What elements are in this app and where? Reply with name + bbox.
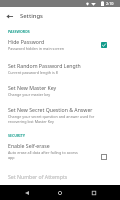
staticText: Change your master key <box>8 92 51 97</box>
staticText: app <box>8 155 15 160</box>
button[interactable]: Back <box>20 185 34 200</box>
button[interactable]: Disabled <box>100 151 108 162</box>
button[interactable]: Set Number of Attempts <box>0 173 120 180</box>
button[interactable]: Set New Master Key <box>0 84 120 96</box>
staticText: recovering lost Master Key <box>8 119 54 124</box>
button[interactable]: Enable Self-erase <box>0 142 120 159</box>
staticText: Settings <box>20 12 43 20</box>
staticText: 2:10 <box>106 1 114 6</box>
button[interactable]: Recent apps <box>87 185 101 200</box>
button[interactable]: Navigate up <box>0 7 18 25</box>
staticText: Set Number of Attempts <box>8 173 68 180</box>
button[interactable]: Home <box>53 185 67 200</box>
staticText: Enable Self-erase <box>8 142 50 149</box>
staticText: SECURITY <box>8 133 26 138</box>
staticText: Auto erase all data after failing to acc… <box>8 150 78 155</box>
button[interactable]: Set Random Password Length <box>0 62 120 74</box>
staticText: Set New Secret Question & Answer <box>8 106 93 113</box>
staticText: Password hidden in main screen <box>8 46 65 51</box>
staticText: Hide Password <box>8 38 45 45</box>
staticText: Change your secret question and answer u… <box>8 114 95 119</box>
button[interactable]: Hide Password <box>0 38 120 50</box>
staticText: Set New Master Key <box>8 84 57 91</box>
staticText: Set Random Password Length <box>8 62 81 69</box>
staticText: PASSWORDS <box>8 29 30 34</box>
button[interactable]: Enabled <box>100 39 108 50</box>
staticText: Current password length is 8 <box>8 70 58 75</box>
button[interactable]: Set New Secret Question & Answer <box>0 106 120 123</box>
